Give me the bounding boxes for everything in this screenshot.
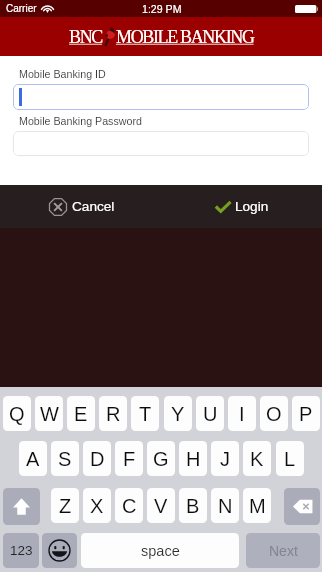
staticText: Cancel (72, 199, 115, 214)
button[interactable]: F (115, 441, 143, 476)
staticText: Carrier (6, 3, 37, 14)
staticText: M (249, 495, 266, 517)
staticText: A (26, 448, 40, 470)
staticText: S (58, 448, 72, 470)
staticText: 123 (10, 543, 33, 558)
button[interactable]: P (292, 396, 320, 431)
button[interactable] (13, 84, 309, 110)
staticText: T (139, 403, 152, 425)
staticText: U (203, 403, 218, 425)
button[interactable]: Login (212, 185, 274, 228)
staticText: Q (9, 403, 25, 425)
button[interactable]: V (147, 488, 175, 523)
button[interactable]: A (19, 441, 47, 476)
staticText: O (266, 403, 282, 425)
button[interactable]: Emoji (42, 533, 77, 568)
staticText: I (239, 403, 245, 425)
staticText: W (40, 403, 59, 425)
staticText: C (122, 495, 137, 517)
staticText: 1:29 PM (142, 3, 182, 15)
button[interactable]: H (179, 441, 207, 476)
button[interactable] (13, 131, 309, 156)
button[interactable]: Cancel (44, 185, 119, 228)
button[interactable]: R (99, 396, 127, 431)
staticText: V (154, 495, 168, 517)
staticText: L (284, 448, 296, 470)
button[interactable]: L (276, 441, 304, 476)
button[interactable]: Backspace (284, 488, 320, 525)
staticText: D (90, 448, 105, 470)
button[interactable]: I (228, 396, 256, 431)
button[interactable]: Shift (3, 488, 40, 525)
button[interactable]: T (131, 396, 159, 431)
staticText: R (106, 403, 121, 425)
staticText: K (250, 448, 264, 470)
staticText: F (123, 448, 136, 470)
button[interactable]: E (67, 396, 95, 431)
staticText: Login (235, 199, 269, 214)
staticText: MOBILE BANKING (116, 27, 254, 47)
button[interactable]: G (147, 441, 175, 476)
button[interactable]: Z (51, 488, 79, 523)
button[interactable]: U (196, 396, 224, 431)
staticText: Next (269, 543, 298, 559)
staticText: G (153, 448, 169, 470)
staticText: P (299, 403, 313, 425)
button[interactable]: Y (164, 396, 192, 431)
button[interactable]: J (211, 441, 239, 476)
button[interactable]: B (179, 488, 207, 523)
button[interactable]: X (83, 488, 111, 523)
button[interactable]: S (51, 441, 79, 476)
button[interactable]: D (83, 441, 111, 476)
staticText: Mobile Banking Password (19, 115, 142, 127)
button[interactable]: Next (246, 533, 320, 568)
button[interactable]: M (243, 488, 271, 523)
staticText: space (141, 543, 180, 559)
button[interactable]: N (211, 488, 239, 523)
button[interactable]: Q (3, 396, 31, 431)
button[interactable]: K (243, 441, 271, 476)
button[interactable]: C (115, 488, 143, 523)
staticText: BNC (69, 27, 102, 47)
staticText: J (220, 448, 230, 470)
button[interactable]: space (81, 533, 239, 568)
staticText: Z (59, 495, 72, 517)
staticText: N (218, 495, 233, 517)
staticText: Y (171, 403, 185, 425)
staticText: E (74, 403, 88, 425)
button[interactable]: W (35, 396, 63, 431)
staticText: X (90, 495, 104, 517)
button[interactable]: 123 (3, 533, 39, 568)
staticText: Mobile Banking ID (19, 68, 106, 80)
staticText: H (186, 448, 201, 470)
staticText: B (186, 495, 200, 517)
button[interactable]: O (260, 396, 288, 431)
